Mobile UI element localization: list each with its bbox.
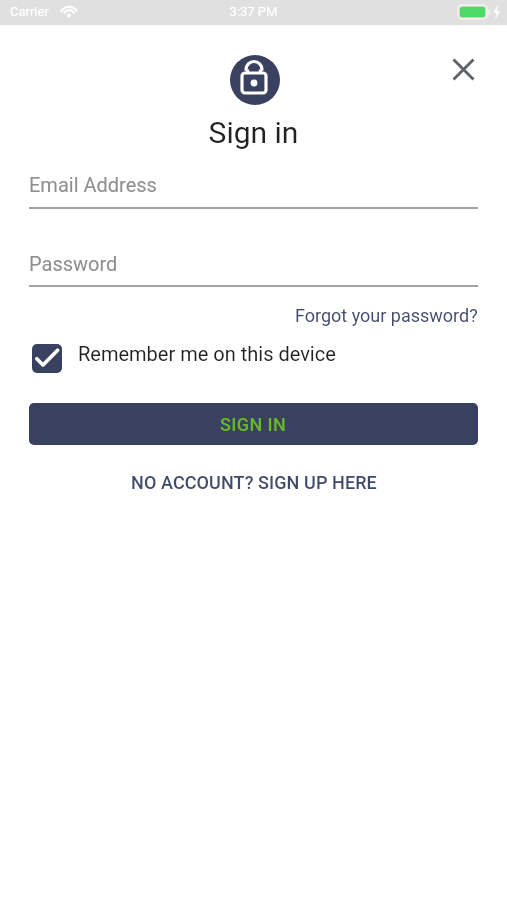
button[interactable]: Forgot your password? [295, 305, 478, 326]
staticText: Carrier [10, 4, 49, 19]
button[interactable]: Remember me on this device [29, 338, 359, 378]
button[interactable] [444, 50, 482, 88]
staticText: SIGN IN [220, 414, 287, 435]
staticText: 3:37 PM [0, 4, 507, 19]
staticText: Password [29, 252, 118, 275]
button[interactable]: NO ACCOUNT? SIGN UP HERE [131, 472, 377, 493]
staticText: Sign in [0, 115, 507, 150]
button[interactable]: SIGN IN [29, 403, 478, 445]
staticText: Email Address [29, 173, 157, 196]
staticText: Remember me on this device [78, 342, 336, 365]
